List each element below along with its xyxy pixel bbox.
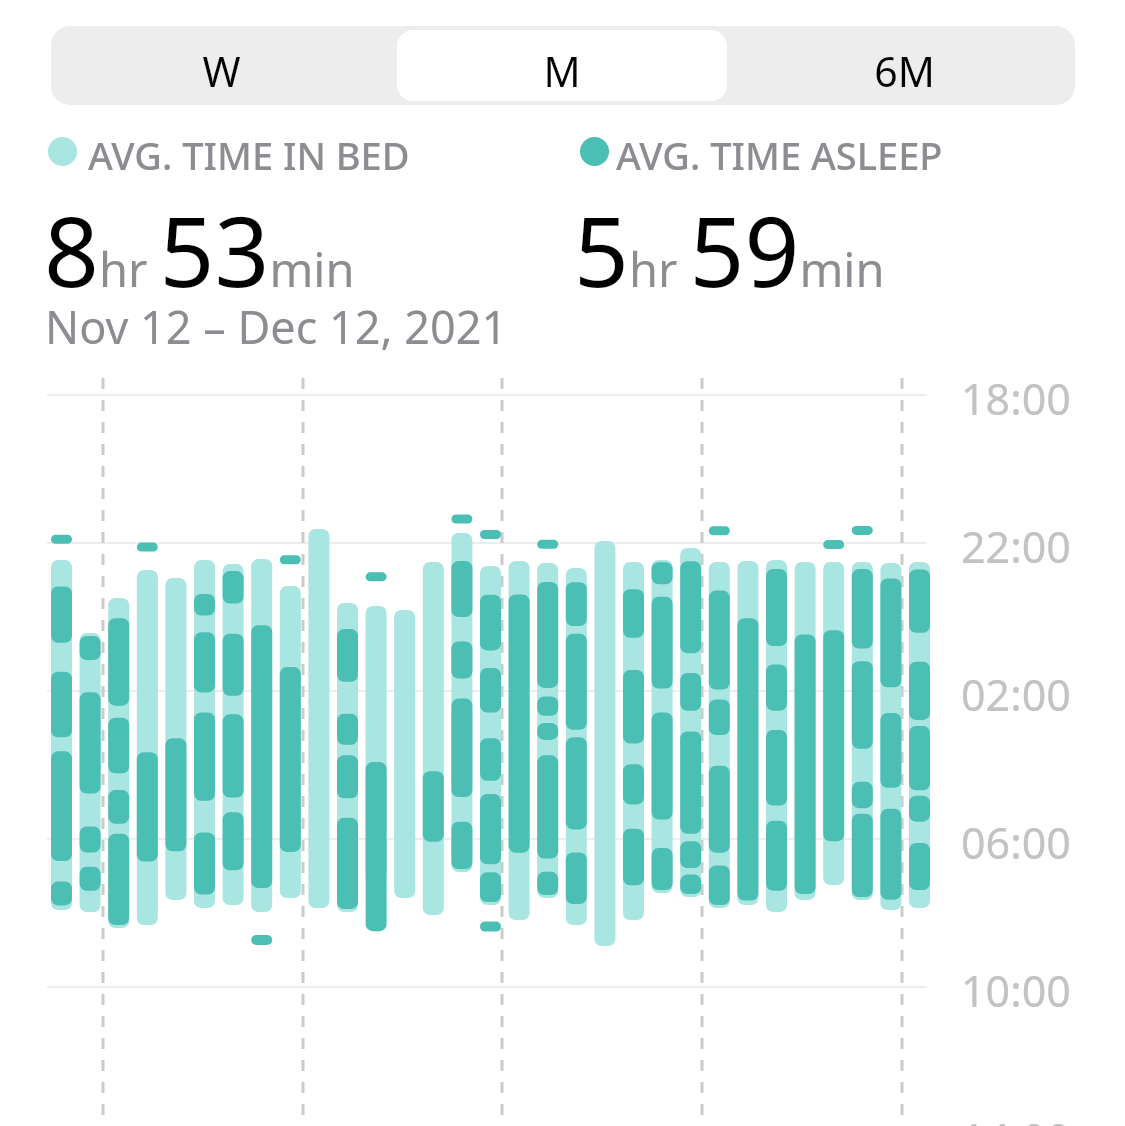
staticText: 02:00 <box>961 665 1071 724</box>
staticText: Nov 12 – Dec 12, 2021 <box>45 296 508 357</box>
staticText: 10:00 <box>961 961 1071 1020</box>
staticText: 06:00 <box>961 813 1071 872</box>
staticText: 6M <box>734 43 1075 99</box>
staticText: 22:00 <box>961 517 1071 576</box>
staticText: 8hr 53min <box>44 184 355 315</box>
button[interactable]: 6M <box>734 26 1075 105</box>
staticText: W <box>51 43 392 99</box>
staticText: AVG. TIME ASLEEP <box>616 129 943 181</box>
staticText: 18:00 <box>961 369 1071 428</box>
button[interactable]: W <box>51 26 392 105</box>
button[interactable]: M <box>397 30 727 101</box>
staticText: AVG. TIME IN BED <box>88 129 410 181</box>
staticText: M <box>397 43 727 99</box>
staticText: 14:00 <box>961 1109 1071 1126</box>
staticText: 5hr 59min <box>574 184 885 315</box>
